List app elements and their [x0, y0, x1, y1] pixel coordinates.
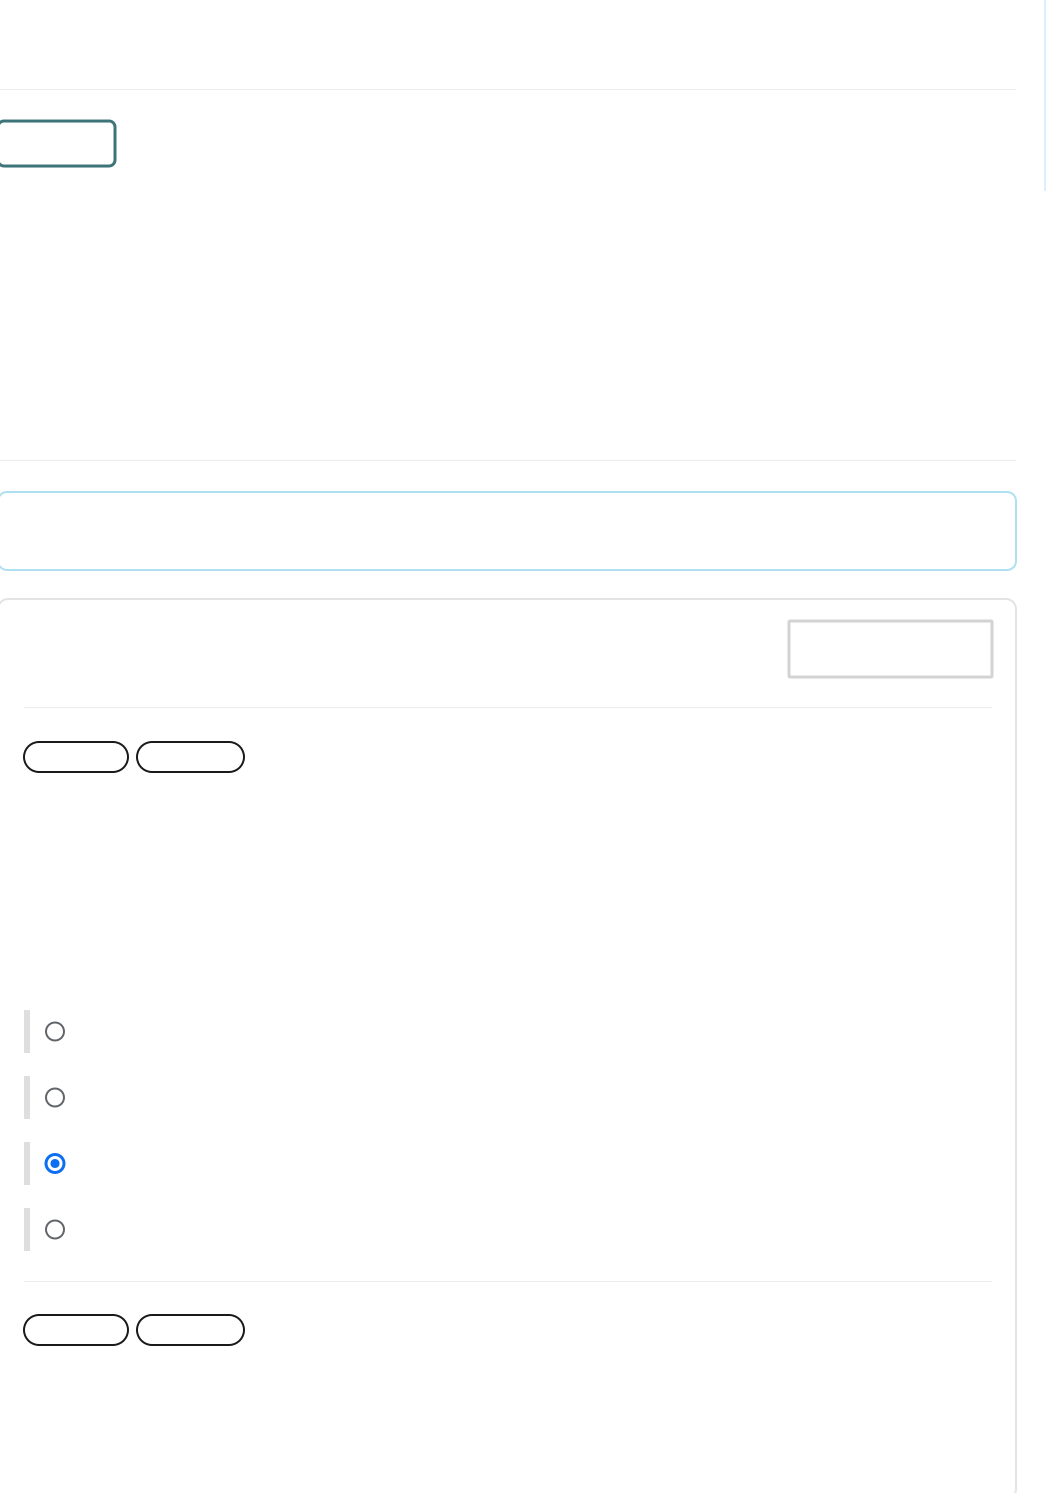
button[interactable]: Next page: [137, 742, 244, 772]
button[interactable]: Option 2: [24, 1076, 992, 1119]
button[interactable]: Rows per page: [789, 621, 992, 677]
button[interactable]: Option 3: [24, 1142, 992, 1185]
button[interactable]: Previous page: [24, 1315, 128, 1345]
button[interactable]: Next page: [137, 1315, 244, 1345]
button[interactable]: Option 1: [24, 1010, 992, 1053]
button[interactable]: Option 4: [24, 1208, 992, 1251]
button[interactable]: Previous page: [24, 742, 128, 772]
button[interactable]: Primary action: [0, 121, 115, 166]
